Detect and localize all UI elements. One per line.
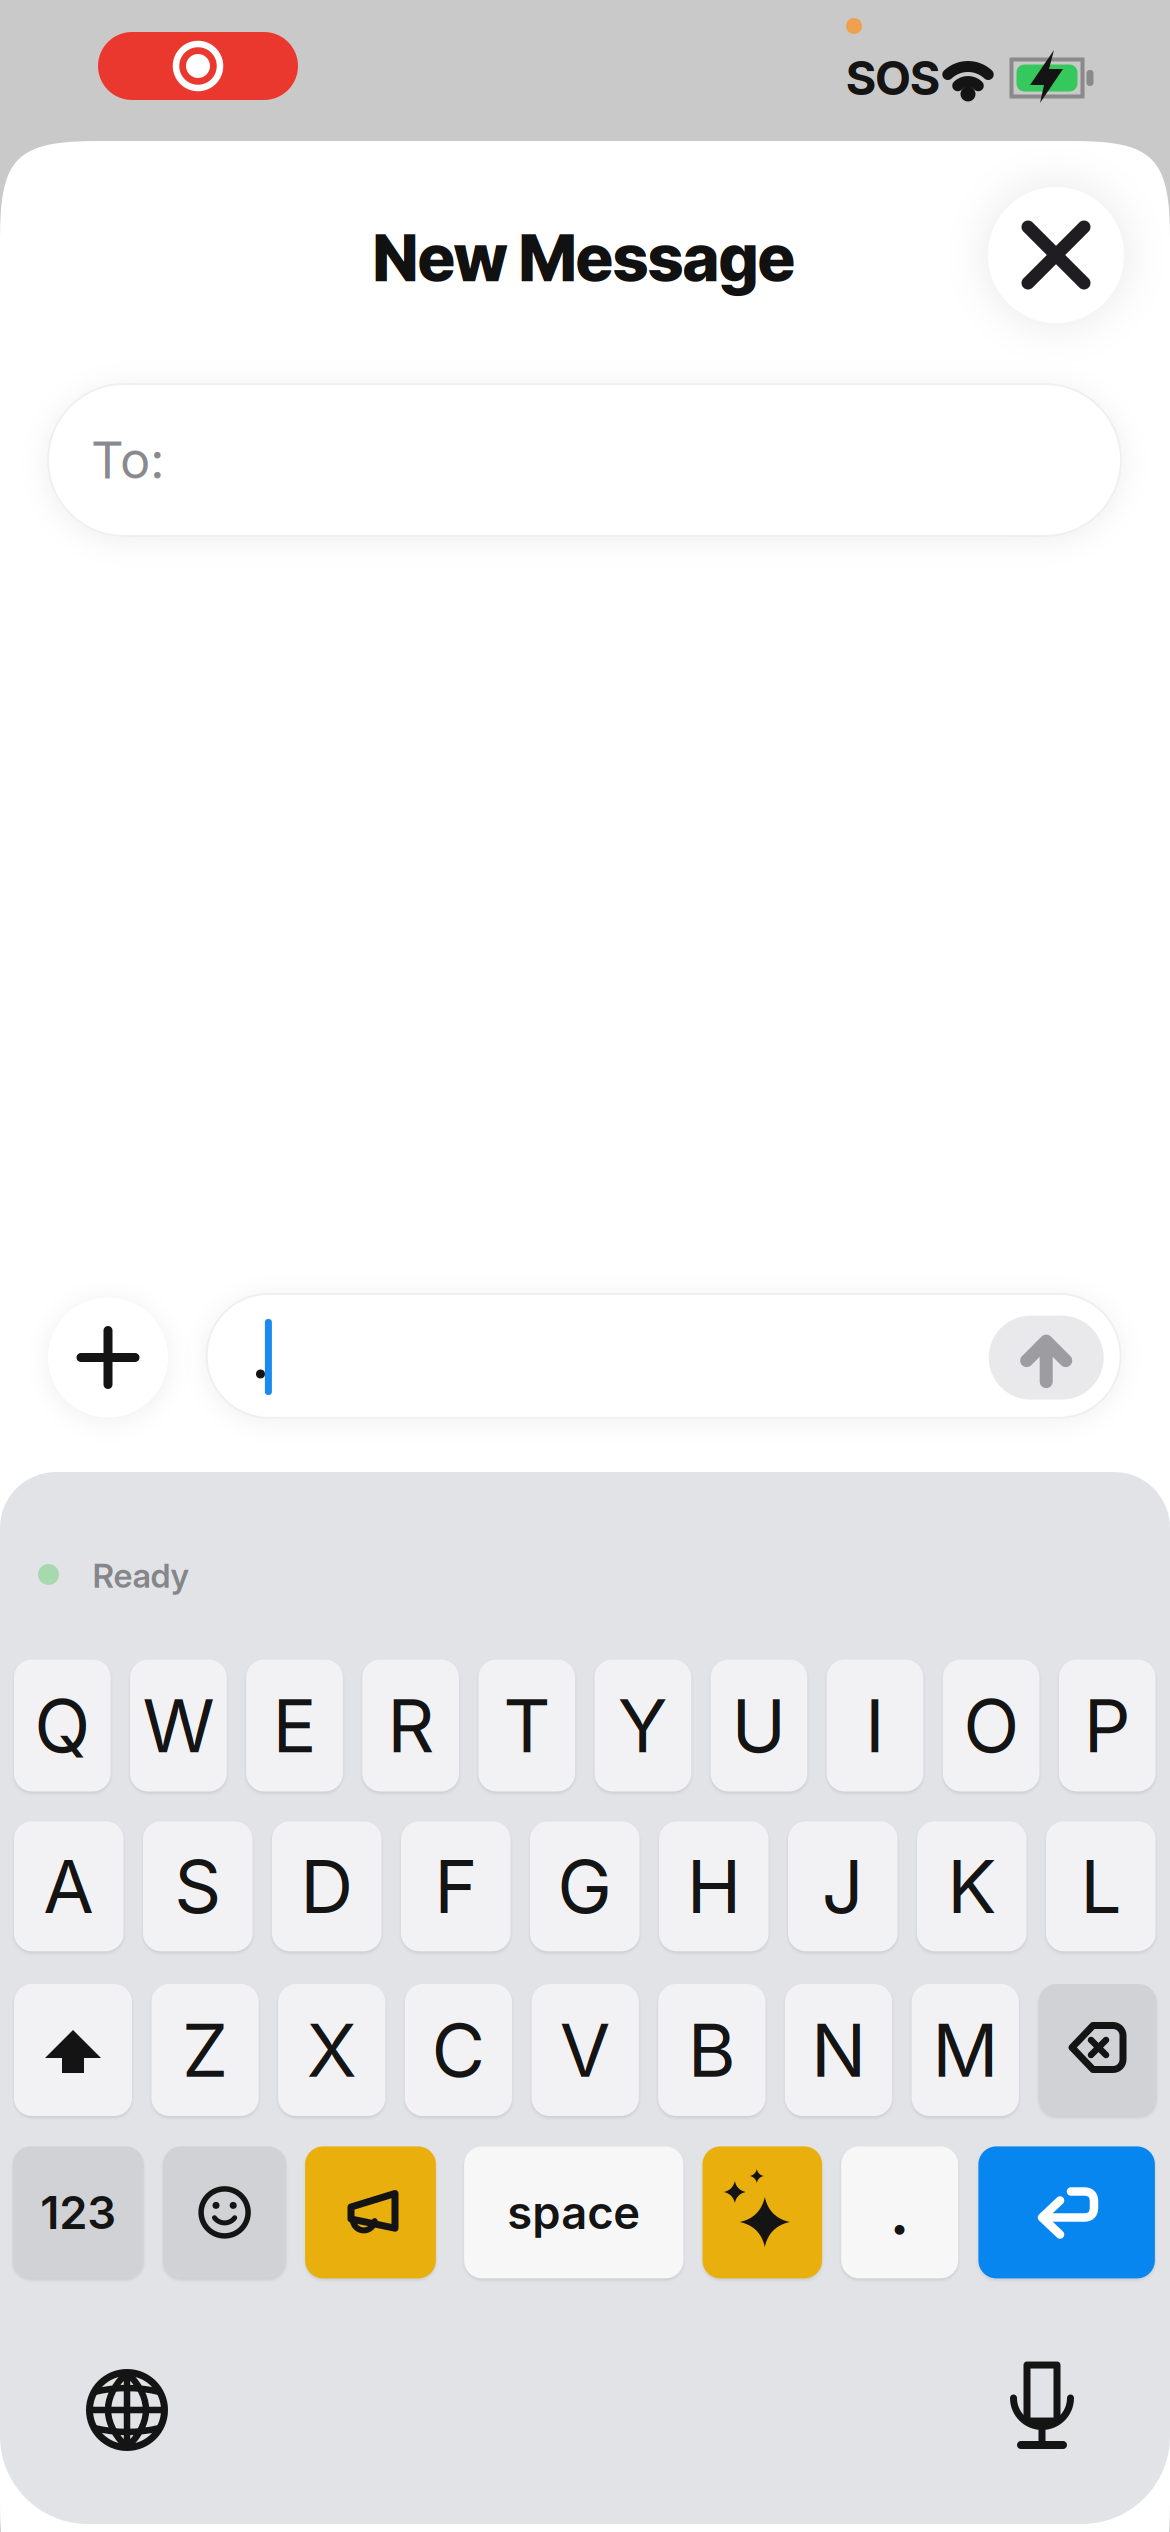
button[interactable]: Emoji	[163, 2146, 286, 2278]
button[interactable]: U	[711, 1659, 807, 1791]
button[interactable]: N	[785, 1984, 892, 2116]
button[interactable]: Send	[989, 1316, 1104, 1400]
button[interactable]: X	[278, 1984, 385, 2116]
button[interactable]: I	[827, 1659, 923, 1791]
staticText: N	[811, 2007, 866, 2093]
button[interactable]: Return	[978, 2146, 1155, 2278]
button[interactable]: Close	[988, 187, 1124, 323]
button[interactable]: S	[143, 1821, 253, 1951]
staticText: W	[142, 1682, 214, 1769]
button[interactable]: Q	[14, 1659, 111, 1791]
staticText: To:	[91, 430, 165, 490]
button[interactable]: To:	[47, 383, 1122, 537]
staticText: SOS	[846, 50, 939, 106]
staticText: U	[731, 1682, 786, 1769]
button[interactable]: Stop recording	[98, 32, 298, 100]
button[interactable]: Add attachment	[48, 1297, 168, 1417]
staticText: S	[174, 1843, 221, 1929]
staticText: .	[890, 2178, 910, 2247]
button[interactable]: P	[1059, 1659, 1156, 1791]
staticText: C	[431, 2007, 485, 2093]
button[interactable]: W	[130, 1659, 227, 1791]
button[interactable]: F	[401, 1821, 511, 1951]
button[interactable]: H	[659, 1821, 769, 1951]
button[interactable]: .	[841, 2146, 958, 2278]
button[interactable]: Next keyboard	[77, 2360, 177, 2460]
staticText: H	[687, 1843, 741, 1929]
staticText: V	[560, 2007, 611, 2093]
button[interactable]: Shift	[14, 1984, 132, 2116]
button[interactable]: D	[272, 1821, 382, 1951]
button[interactable]: K	[917, 1821, 1027, 1951]
button[interactable]: Announce	[305, 2146, 436, 2278]
staticText: New Message	[373, 219, 795, 297]
staticText: B	[688, 2007, 736, 2093]
button[interactable]: M	[912, 1984, 1019, 2116]
staticText: Q	[34, 1682, 90, 1769]
button[interactable]: AI assistant	[702, 2146, 822, 2278]
staticText: X	[307, 2007, 357, 2093]
button[interactable]: O	[943, 1659, 1039, 1791]
button[interactable]: 123	[13, 2146, 144, 2278]
button[interactable]: C	[405, 1984, 512, 2116]
staticText: F	[434, 1843, 477, 1929]
button[interactable]: R	[362, 1659, 459, 1791]
staticText: L	[1080, 1843, 1121, 1929]
staticText: O	[963, 1682, 1019, 1769]
button[interactable]: Dictation	[992, 2358, 1092, 2458]
staticText: E	[273, 1682, 317, 1769]
button[interactable]: space	[464, 2146, 683, 2278]
button[interactable]: E	[246, 1659, 343, 1791]
staticText: 123	[40, 2186, 116, 2239]
staticText: R	[387, 1682, 434, 1769]
staticText: Y	[618, 1682, 668, 1769]
staticText: D	[300, 1843, 353, 1929]
button[interactable]: Delete	[1039, 1984, 1157, 2116]
staticText: I	[865, 1682, 885, 1769]
button[interactable]: L	[1046, 1821, 1156, 1951]
button[interactable]: T	[478, 1659, 575, 1791]
button[interactable]: G	[530, 1821, 640, 1951]
staticText: space	[507, 2186, 640, 2239]
staticText: A	[43, 1843, 94, 1929]
staticText: J	[822, 1843, 864, 1929]
staticText: M	[932, 2007, 998, 2093]
button[interactable]: V	[531, 1984, 639, 2116]
staticText: T	[503, 1682, 550, 1769]
staticText: Z	[182, 2007, 228, 2093]
button[interactable]: Z	[151, 1984, 259, 2116]
button[interactable]: J	[788, 1821, 898, 1951]
button[interactable]: A	[14, 1821, 124, 1951]
button[interactable]: B	[658, 1984, 765, 2116]
staticText: Ready	[92, 1556, 189, 1595]
staticText: K	[947, 1843, 996, 1929]
staticText: G	[557, 1843, 612, 1929]
button[interactable]: Y	[594, 1659, 691, 1791]
staticText: P	[1084, 1682, 1131, 1769]
